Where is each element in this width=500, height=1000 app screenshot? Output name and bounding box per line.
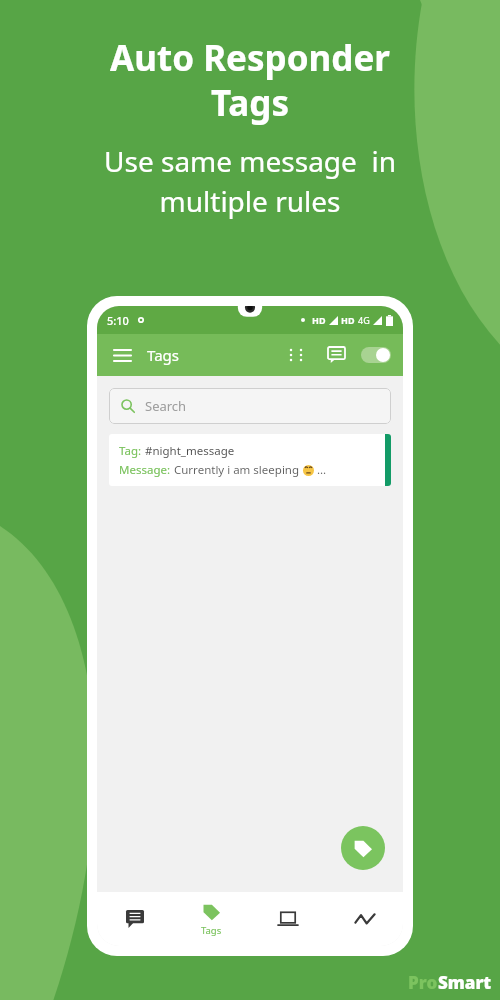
staticText: Tags bbox=[147, 345, 179, 365]
button[interactable]: Statistics bbox=[326, 892, 403, 946]
button[interactable]: Tags bbox=[173, 892, 249, 946]
staticText: Search bbox=[145, 397, 187, 415]
staticText: Message: bbox=[119, 462, 174, 478]
button[interactable]: Rules bbox=[97, 892, 173, 946]
button[interactable]: Web bbox=[249, 892, 326, 946]
button[interactable]: Tag: bbox=[109, 434, 391, 486]
button[interactable]: Messages bbox=[323, 342, 349, 368]
staticText: Smart bbox=[438, 971, 492, 994]
button[interactable]: Reorder bbox=[283, 342, 309, 368]
staticText: Auto Responder Tags bbox=[110, 34, 390, 126]
staticText: … bbox=[314, 462, 327, 478]
staticText: HD bbox=[312, 314, 326, 326]
staticText: Tags bbox=[201, 924, 222, 937]
staticText: Pro bbox=[408, 971, 438, 994]
staticText: Tag: bbox=[119, 443, 145, 459]
staticText: HD bbox=[341, 314, 355, 326]
staticText: Use same message in multiple rules bbox=[104, 142, 396, 221]
staticText: Currently i am sleeping bbox=[174, 462, 303, 478]
staticText: 4G bbox=[358, 314, 370, 326]
button[interactable]: Search bbox=[109, 388, 391, 424]
staticText: #night_message bbox=[145, 443, 235, 459]
button[interactable]: Menu bbox=[109, 342, 135, 368]
button[interactable]: Add tag bbox=[341, 826, 385, 870]
staticText: 5:10 bbox=[107, 313, 129, 328]
button[interactable]: Enable bbox=[361, 347, 391, 363]
